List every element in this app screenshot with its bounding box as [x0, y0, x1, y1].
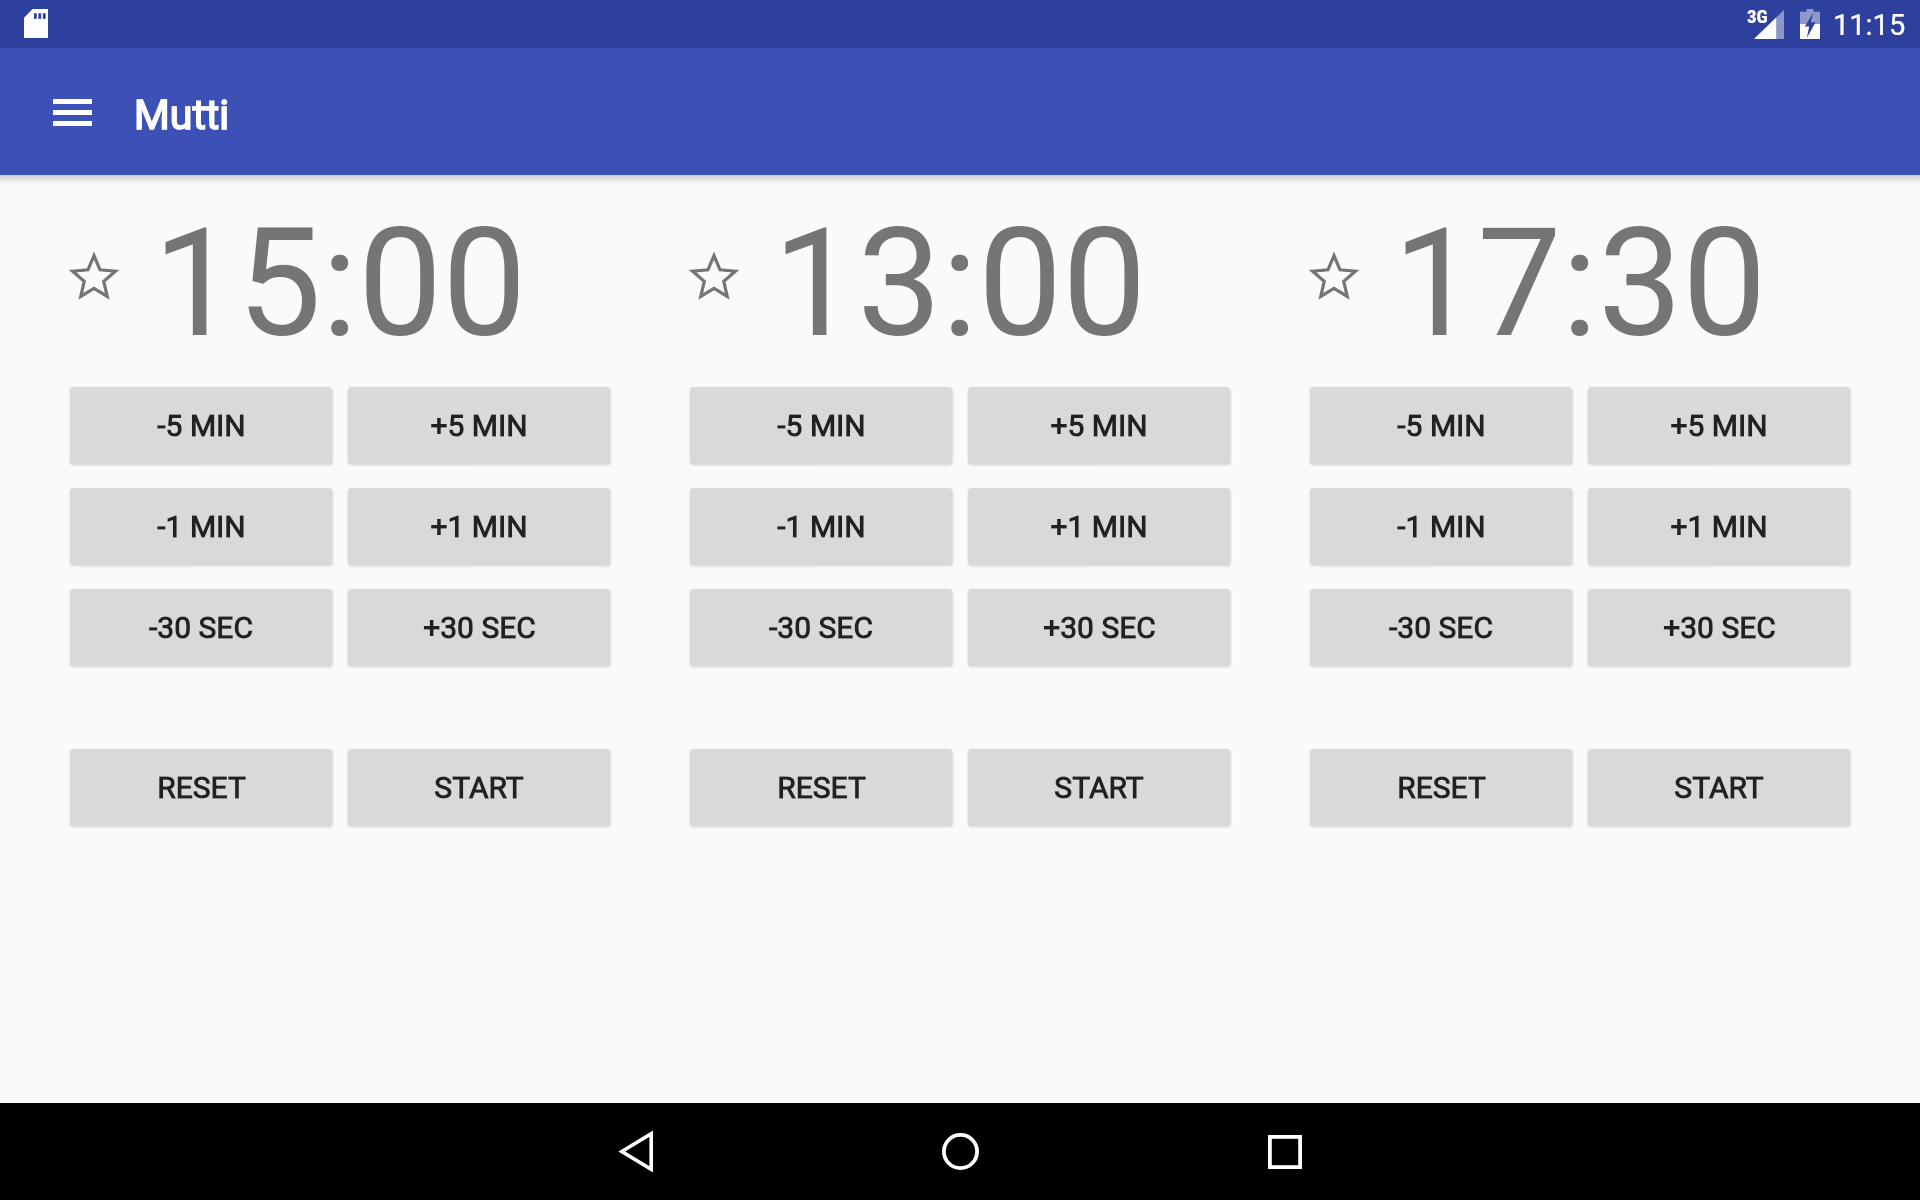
- button[interactable]: RESET: [70, 749, 332, 826]
- staticText: +1 MIN: [1050, 509, 1148, 544]
- staticText: 11:15: [1833, 8, 1906, 42]
- button[interactable]: RESET: [1310, 749, 1572, 826]
- button[interactable]: +30 SEC: [968, 589, 1230, 666]
- button[interactable]: Back: [600, 1115, 673, 1188]
- button[interactable]: Recent apps: [1248, 1115, 1321, 1188]
- staticText: -1 MIN: [777, 509, 866, 544]
- staticText: 3G: [1747, 5, 1768, 27]
- staticText: -5 MIN: [1397, 408, 1486, 443]
- staticText: +5 MIN: [430, 408, 528, 443]
- button[interactable]: RESET: [690, 749, 952, 826]
- button[interactable]: START: [968, 749, 1230, 826]
- staticText: START: [1054, 770, 1144, 805]
- button[interactable]: +30 SEC: [1588, 589, 1850, 666]
- staticText: -30 SEC: [1389, 610, 1493, 645]
- button[interactable]: +5 MIN: [968, 387, 1230, 464]
- staticText: +30 SEC: [423, 610, 536, 645]
- staticText: 13:00: [773, 196, 1147, 372]
- staticText: -30 SEC: [149, 610, 253, 645]
- button[interactable]: +5 MIN: [1588, 387, 1850, 464]
- button[interactable]: Favourite: [65, 247, 123, 305]
- button[interactable]: START: [1588, 749, 1850, 826]
- button[interactable]: -1 MIN: [1310, 488, 1572, 565]
- button[interactable]: Favourite: [685, 247, 743, 305]
- staticText: -1 MIN: [1397, 509, 1486, 544]
- button[interactable]: +5 MIN: [348, 387, 610, 464]
- button[interactable]: -5 MIN: [70, 387, 332, 464]
- button[interactable]: +1 MIN: [968, 488, 1230, 565]
- button[interactable]: Open navigation menu: [36, 76, 108, 148]
- button[interactable]: -30 SEC: [1310, 589, 1572, 666]
- button[interactable]: -30 SEC: [70, 589, 332, 666]
- button[interactable]: Favourite: [1305, 247, 1363, 305]
- staticText: 17:30: [1393, 196, 1767, 372]
- staticText: START: [434, 770, 524, 805]
- staticText: -30 SEC: [769, 610, 873, 645]
- staticText: RESET: [1397, 770, 1486, 805]
- button[interactable]: Home: [924, 1115, 997, 1188]
- staticText: RESET: [157, 770, 246, 805]
- staticText: +5 MIN: [1050, 408, 1148, 443]
- button[interactable]: START: [348, 749, 610, 826]
- button[interactable]: +1 MIN: [1588, 488, 1850, 565]
- staticText: RESET: [777, 770, 866, 805]
- staticText: +1 MIN: [430, 509, 528, 544]
- staticText: +30 SEC: [1663, 610, 1776, 645]
- staticText: +1 MIN: [1670, 509, 1768, 544]
- button[interactable]: +1 MIN: [348, 488, 610, 565]
- button[interactable]: -1 MIN: [70, 488, 332, 565]
- staticText: +30 SEC: [1043, 610, 1156, 645]
- button[interactable]: -1 MIN: [690, 488, 952, 565]
- staticText: 15:00: [153, 196, 527, 372]
- staticText: -5 MIN: [777, 408, 866, 443]
- staticText: START: [1674, 770, 1764, 805]
- button[interactable]: -30 SEC: [690, 589, 952, 666]
- staticText: +5 MIN: [1670, 408, 1768, 443]
- button[interactable]: -5 MIN: [690, 387, 952, 464]
- button[interactable]: -5 MIN: [1310, 387, 1572, 464]
- staticText: -5 MIN: [157, 408, 246, 443]
- staticText: Mutti: [134, 91, 230, 139]
- staticText: -1 MIN: [157, 509, 246, 544]
- button[interactable]: +30 SEC: [348, 589, 610, 666]
